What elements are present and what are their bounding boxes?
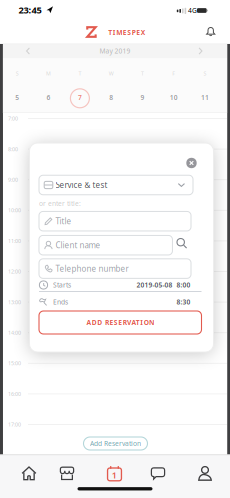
button[interactable]: Telephone number: [39, 259, 191, 278]
staticText: Title: [55, 216, 71, 226]
staticText: 10: [170, 93, 178, 102]
staticText: M: [46, 70, 51, 77]
staticText: Starts: [53, 281, 71, 289]
button[interactable]: Client name: [39, 235, 172, 255]
button[interactable]: Title: [39, 211, 191, 231]
button[interactable]: Starts: [39, 278, 201, 291]
staticText: 17:00: [8, 421, 21, 428]
staticText: 9: [140, 93, 144, 102]
button[interactable]: Shop: [56, 463, 78, 483]
staticText: T: [78, 70, 81, 77]
staticText: S: [204, 70, 207, 77]
staticText: F: [172, 70, 175, 77]
staticText: or enter title:: [39, 199, 81, 208]
button[interactable]: Calendar: [103, 463, 125, 483]
button[interactable]: Next week: [195, 46, 205, 56]
staticText: 8:30: [176, 298, 190, 306]
staticText: TIMESPEX: [108, 28, 145, 37]
button[interactable]: 9: [131, 86, 153, 108]
staticText: W: [109, 70, 114, 77]
staticText: 5: [15, 93, 19, 102]
button[interactable]: 8: [100, 86, 122, 108]
staticText: 16:00: [8, 390, 21, 397]
staticText: 7:00: [8, 115, 18, 122]
staticText: 23:45: [18, 4, 41, 16]
button[interactable]: 7: [69, 86, 91, 108]
staticText: 8:00: [8, 146, 18, 153]
button[interactable]: 6: [38, 86, 60, 108]
button[interactable]: Ends: [39, 295, 201, 308]
staticText: 7: [78, 93, 82, 102]
button[interactable]: 10: [163, 86, 185, 108]
button[interactable]: 11: [194, 86, 216, 108]
staticText: S: [16, 70, 19, 77]
staticText: 14:00: [8, 329, 21, 336]
staticText: 6: [47, 93, 51, 102]
staticText: 1: [112, 470, 117, 480]
button[interactable]: 5: [6, 86, 28, 108]
staticText: Service & test: [55, 180, 107, 190]
staticText: 9:00: [8, 176, 18, 183]
staticText: 4G: [188, 6, 197, 15]
staticText: 10:00: [8, 207, 21, 214]
staticText: 11:00: [8, 237, 21, 244]
staticText: Add Reservation: [90, 439, 141, 448]
button[interactable]: Profile: [194, 463, 216, 483]
button[interactable]: Notifications: [203, 23, 219, 39]
button[interactable]: ADD RESERVATION: [39, 311, 201, 334]
button[interactable]: Close: [186, 157, 197, 168]
staticText: 11: [201, 93, 209, 102]
staticText: 15:00: [8, 360, 21, 367]
button[interactable]: Add Reservation: [83, 437, 147, 450]
button[interactable]: Home: [18, 463, 40, 483]
staticText: T: [141, 70, 144, 77]
button[interactable]: Service & test: [39, 175, 193, 195]
staticText: 12:00: [8, 268, 21, 275]
staticText: Telephone number: [55, 263, 128, 274]
staticText: Client name: [55, 240, 100, 250]
staticText: 8: [109, 93, 113, 102]
staticText: 2019-05-08 8:00: [136, 281, 190, 289]
staticText: Ends: [53, 298, 68, 306]
button[interactable]: Previous week: [23, 46, 33, 56]
button[interactable]: Messages: [147, 463, 169, 483]
staticText: ADD RESERVATION: [86, 318, 154, 327]
staticText: 13:00: [8, 299, 21, 306]
button[interactable]: Search clients: [177, 238, 187, 248]
staticText: May 2019: [99, 47, 130, 55]
